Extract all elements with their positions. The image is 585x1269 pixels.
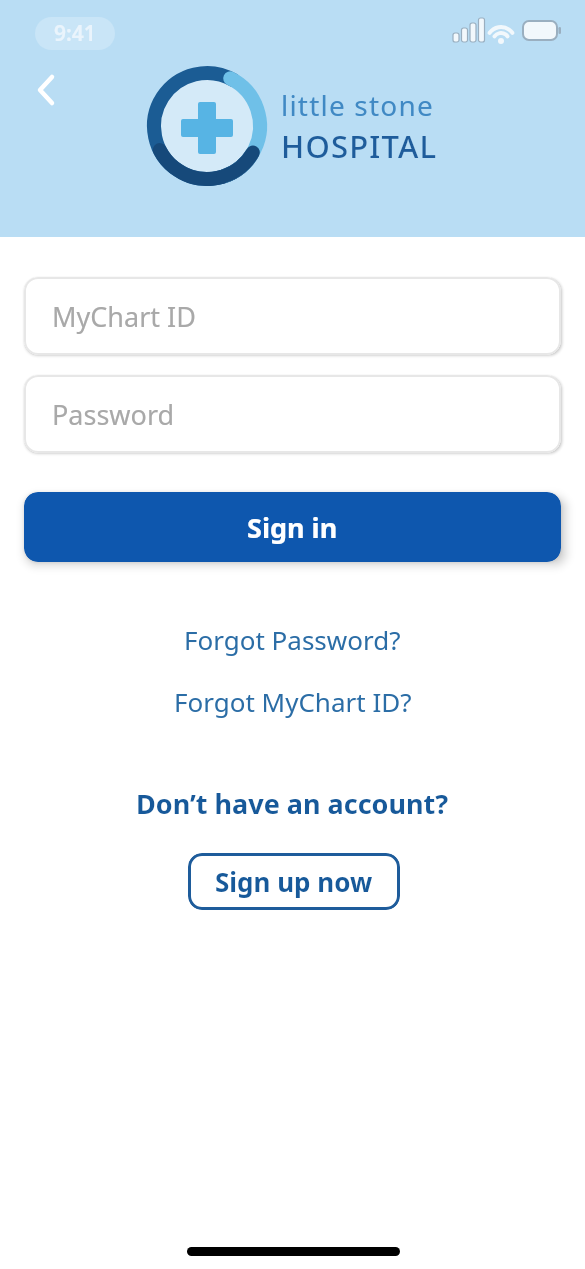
button[interactable] (24, 66, 68, 114)
staticText: Sign up now (215, 864, 373, 899)
staticText: Forgot Password? (184, 622, 401, 657)
button[interactable]: Sign up now (188, 853, 400, 910)
button[interactable]: Password (24, 375, 561, 453)
staticText: little stone (281, 86, 434, 124)
staticText: Sign in (247, 509, 338, 546)
staticText: Forgot MyChart ID? (174, 684, 412, 719)
staticText: 9:41 (54, 19, 96, 48)
staticText: Don’t have an account? (136, 785, 449, 822)
button[interactable]: MyChart ID (24, 277, 561, 355)
staticText: MyChart ID (52, 298, 196, 335)
button[interactable]: Sign in (24, 492, 561, 562)
staticText: HOSPITAL (281, 125, 438, 167)
button[interactable]: Forgot Password? (184, 622, 401, 657)
button[interactable]: Forgot MyChart ID? (174, 684, 412, 719)
staticText: Password (52, 396, 175, 433)
